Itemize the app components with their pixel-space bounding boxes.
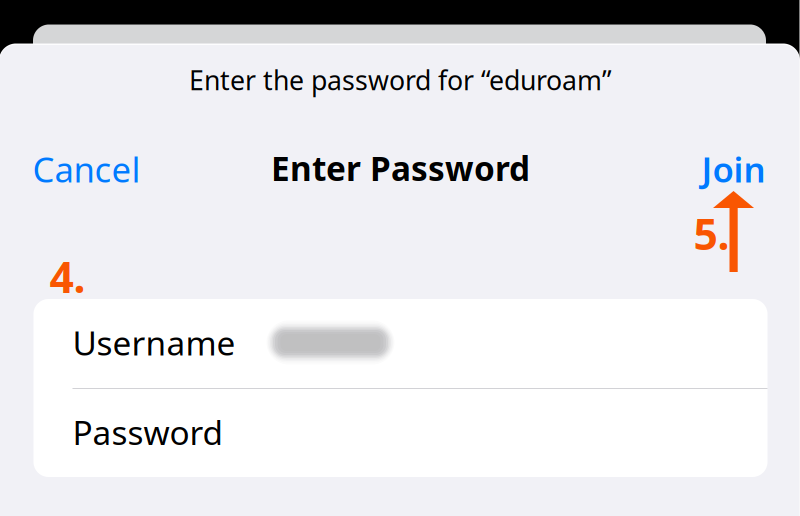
staticText: Enter the password for “eduroam” [189,62,612,98]
staticText: Join [701,146,765,192]
staticText: 4. [49,248,85,305]
staticText: Username [72,320,235,365]
button[interactable]: Cancel [15,145,155,193]
staticText: Password [72,410,223,454]
staticText: 5. [693,205,729,262]
staticText: Enter Password [271,146,530,190]
button[interactable]: Password [33,388,767,476]
staticText: Cancel [32,146,140,192]
button[interactable]: Username [33,298,767,387]
button[interactable]: Join [649,145,783,193]
